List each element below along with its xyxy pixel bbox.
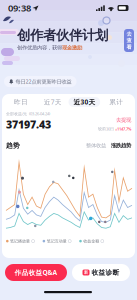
staticText: 趋势 — [6, 141, 20, 150]
staticText: 整体收益 — [86, 142, 106, 149]
staticText: 收益诊断 — [91, 268, 119, 277]
staticText: 查 — [126, 37, 131, 44]
staticText: 昨日 — [14, 98, 28, 106]
button[interactable]: 去 — [124, 29, 134, 52]
staticText: 去 — [126, 31, 131, 37]
button[interactable]: 作品收益Q&A — [5, 264, 67, 281]
button[interactable]: 昨日 — [5, 97, 37, 107]
staticText: 近30天 — [73, 98, 95, 106]
button[interactable]: 涨跌趋势 — [106, 142, 131, 149]
staticText: 创作优质内容，获得 — [17, 44, 62, 51]
staticText: 09:38 — [8, 2, 31, 14]
staticText: 创作者伙伴计划 — [17, 27, 108, 43]
staticText: 近7天 — [44, 98, 62, 106]
staticText: 收益金额 — [83, 239, 99, 244]
button[interactable]: 新 — [72, 264, 130, 281]
button[interactable]: 去提现 — [116, 117, 131, 123]
staticText: 全部收益/元 (03.26-04.24) — [6, 111, 50, 116]
staticText: +1147.7% — [115, 126, 131, 131]
staticText: 新 — [84, 270, 88, 275]
staticText: 现金激励 — [62, 44, 82, 51]
button[interactable]: 整体收益 — [86, 142, 106, 149]
staticText: 37197.43 — [6, 117, 51, 131]
staticText: 去提现 — [116, 117, 131, 123]
staticText: 累计 — [109, 98, 123, 106]
staticText: 看 — [126, 44, 131, 50]
staticText: 每日22点前更新昨日收益 — [15, 78, 71, 85]
button[interactable]: 近30天 — [68, 97, 100, 107]
staticText: 笔记互动量 — [47, 239, 67, 244]
button[interactable]: 近7天 — [37, 97, 69, 107]
staticText: 作品收益Q&A — [14, 268, 57, 277]
staticText: 涨跌趋势 — [111, 142, 131, 149]
staticText: 较前30日 — [98, 126, 114, 131]
staticText: 笔记播放量 — [10, 239, 30, 244]
button[interactable]: 累计 — [100, 97, 132, 107]
